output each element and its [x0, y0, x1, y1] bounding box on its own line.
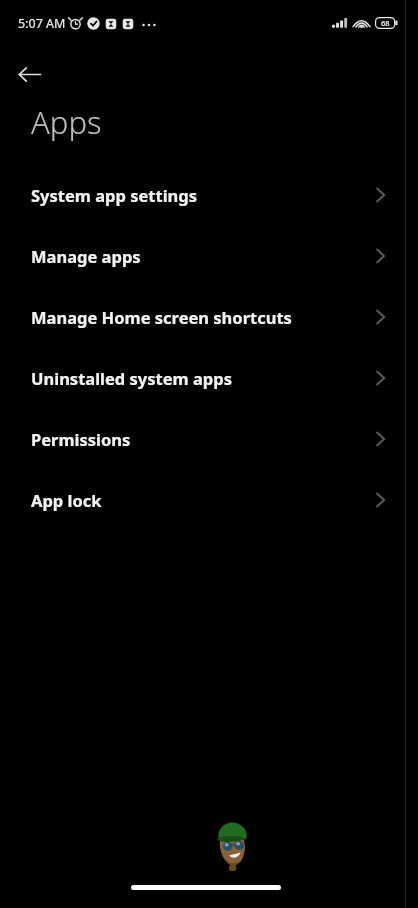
staticText: System app settings: [31, 184, 198, 206]
staticText: 5:07 AM: [18, 15, 66, 32]
staticText: Uninstalled system apps: [31, 367, 232, 389]
staticText: Manage Home screen shortcuts: [31, 306, 292, 328]
button[interactable]: Permissions: [0, 408, 418, 469]
staticText: 68: [381, 18, 390, 28]
staticText: Permissions: [31, 428, 131, 450]
button[interactable]: Uninstalled system apps: [0, 347, 418, 408]
button[interactable]: Manage apps: [0, 225, 418, 286]
button[interactable]: System app settings: [0, 164, 418, 225]
staticText: Manage apps: [31, 245, 141, 267]
button[interactable]: Back: [18, 54, 56, 94]
button[interactable]: Manage Home screen shortcuts: [0, 286, 418, 347]
staticText: App lock: [31, 489, 102, 511]
staticText: Apps: [31, 101, 102, 143]
button[interactable]: App lock: [0, 469, 418, 530]
